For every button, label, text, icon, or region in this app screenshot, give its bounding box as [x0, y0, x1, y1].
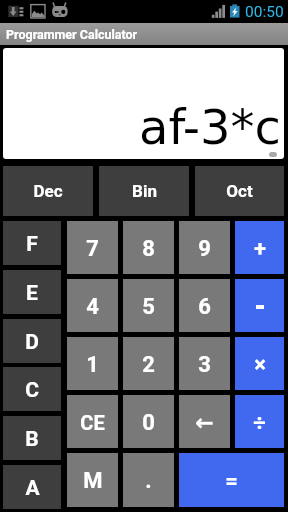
staticText: E — [26, 281, 38, 306]
button[interactable]: = — [179, 453, 284, 507]
staticText: 4 — [86, 294, 99, 320]
staticText: CE — [80, 411, 105, 434]
button[interactable]: Plus — [235, 221, 284, 274]
staticText: . — [145, 468, 152, 494]
button[interactable]: M — [67, 453, 118, 507]
button[interactable]: C — [3, 367, 61, 411]
staticText: 6 — [198, 294, 211, 320]
staticText: 7 — [86, 236, 99, 262]
button[interactable]: A — [3, 465, 61, 509]
button[interactable]: F — [3, 221, 61, 265]
staticText: ÷ — [253, 410, 266, 436]
staticText: 9 — [198, 236, 211, 262]
button[interactable]: 3 — [179, 337, 230, 390]
button[interactable]: 8 — [123, 221, 174, 274]
staticText: ← — [195, 410, 214, 436]
button[interactable]: D — [3, 319, 61, 363]
staticText: af-3*c — [139, 99, 281, 155]
button[interactable]: 6 — [179, 279, 230, 332]
staticText: 3 — [198, 352, 211, 378]
staticText: D — [25, 330, 39, 355]
staticText: 00:50 — [245, 3, 284, 21]
button[interactable]: 0 — [123, 395, 174, 448]
staticText: Dec — [33, 181, 63, 201]
staticText: = — [225, 468, 238, 494]
staticText: C — [25, 378, 39, 403]
staticText: Bin — [132, 181, 157, 201]
button[interactable]: B — [3, 416, 61, 460]
staticText: 0 — [142, 410, 155, 436]
staticText: M — [83, 468, 103, 494]
button[interactable]: af-3*c — [3, 48, 284, 159]
staticText: 2 — [142, 352, 155, 378]
button[interactable]: E — [3, 270, 61, 314]
staticText: Oct — [226, 181, 253, 201]
staticText: F — [26, 232, 38, 257]
button[interactable]: Bin — [99, 166, 189, 216]
staticText: 8 — [142, 236, 155, 262]
button[interactable]: Oct — [195, 166, 284, 216]
button[interactable]: 5 — [123, 279, 174, 332]
button[interactable]: 7 — [67, 221, 118, 274]
button[interactable]: 2 — [123, 337, 174, 390]
button[interactable]: 1 — [67, 337, 118, 390]
button[interactable]: Minus — [235, 279, 284, 332]
button[interactable]: Backspace — [179, 395, 230, 448]
staticText: × — [254, 352, 266, 378]
button[interactable]: Dec — [3, 166, 93, 216]
button[interactable]: . — [123, 453, 174, 507]
staticText: + — [254, 236, 266, 262]
button[interactable]: 4 — [67, 279, 118, 332]
button[interactable]: Divide — [235, 395, 284, 448]
staticText: 5 — [142, 294, 155, 320]
staticText: B — [25, 427, 39, 452]
staticText: 1 — [86, 352, 99, 378]
button[interactable]: CE — [67, 395, 118, 448]
staticText: A — [25, 476, 40, 501]
button[interactable]: 9 — [179, 221, 230, 274]
staticText: Programmer Calculator — [6, 27, 138, 42]
button[interactable]: Multiply — [235, 337, 284, 390]
